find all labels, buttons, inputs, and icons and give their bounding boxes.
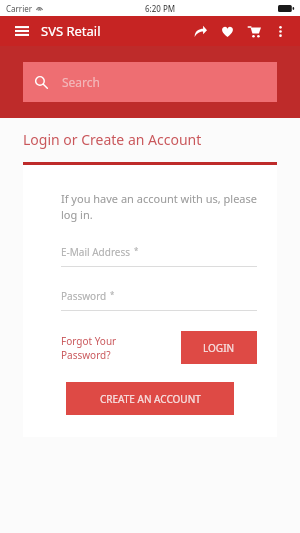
button[interactable]: More options bbox=[269, 20, 291, 42]
staticText: * bbox=[134, 245, 139, 256]
staticText: Carrier bbox=[6, 3, 33, 14]
staticText: CREATE AN ACCOUNT bbox=[100, 392, 201, 406]
button[interactable]: Share bbox=[189, 20, 211, 42]
button[interactable]: CREATE AN ACCOUNT bbox=[66, 382, 234, 415]
button[interactable]: Search bbox=[23, 62, 277, 102]
button[interactable]: Password bbox=[61, 289, 257, 311]
staticText: * bbox=[110, 289, 115, 300]
staticText: E-Mail Address bbox=[61, 245, 131, 259]
button[interactable]: E-Mail Address bbox=[61, 245, 257, 267]
button[interactable]: Forgot Your Password? bbox=[61, 334, 117, 362]
staticText: If you have an account with us, please l… bbox=[61, 191, 257, 223]
button[interactable]: Menu bbox=[11, 20, 33, 42]
staticText: 6:20 PM bbox=[145, 3, 176, 14]
button[interactable]: Favorites bbox=[216, 20, 238, 42]
staticText: SVS Retail bbox=[41, 22, 101, 40]
staticText: Login or Create an Account bbox=[23, 130, 202, 149]
staticText: Search bbox=[62, 74, 100, 90]
button[interactable]: LOGIN bbox=[181, 331, 257, 364]
staticText: Password bbox=[61, 289, 107, 303]
staticText: LOGIN bbox=[203, 341, 235, 355]
button[interactable]: Cart bbox=[243, 20, 265, 42]
